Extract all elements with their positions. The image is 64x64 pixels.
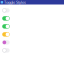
button[interactable]: Bluetooth, on — [2, 24, 10, 29]
button[interactable]: Airplane Mode, off — [2, 8, 10, 13]
button[interactable]: Wi-Fi, on — [2, 16, 10, 21]
staticText: Toggle Styles — [4, 0, 26, 5]
button[interactable]: Night Shift, off — [2, 40, 10, 45]
button[interactable]: Low Power Mode, off — [2, 48, 10, 53]
button[interactable]: Do Not Disturb, on — [2, 32, 10, 37]
